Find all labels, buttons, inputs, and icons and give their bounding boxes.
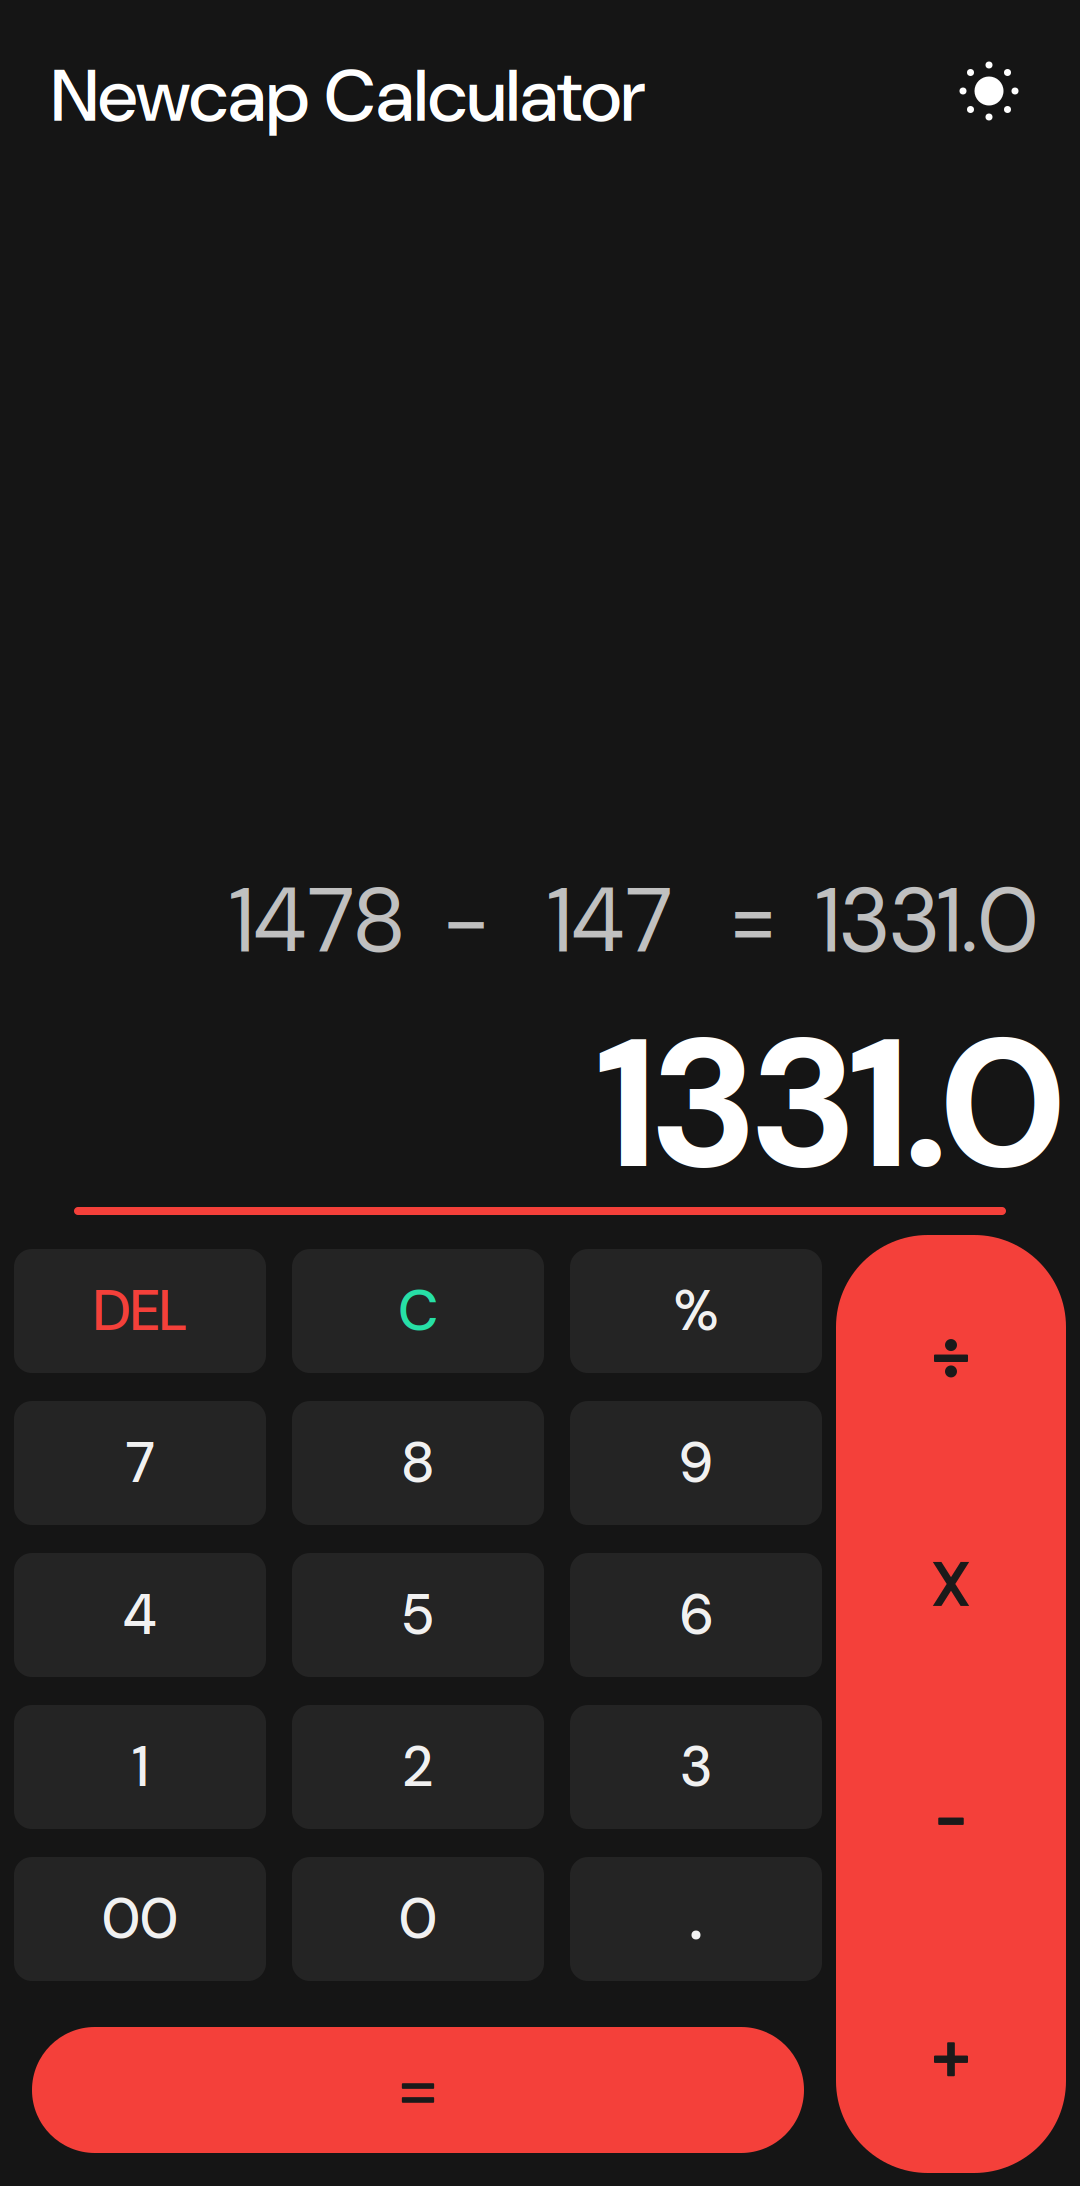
button[interactable]: Toggle light mode [949, 51, 1029, 131]
staticText: 3 [680, 1730, 711, 1803]
staticText: 1 [132, 1730, 147, 1803]
button[interactable]: Divide [836, 1235, 1066, 1469]
staticText: Newcap Calculator [51, 48, 645, 124]
button[interactable]: % [570, 1249, 822, 1373]
button[interactable]: DEL [14, 1249, 266, 1373]
button[interactable]: Multiply [836, 1469, 1066, 1704]
staticText: % [673, 1274, 718, 1347]
staticText: 0 [399, 1882, 437, 1955]
button[interactable]: Equals [32, 2027, 804, 2153]
staticText: 2 [403, 1730, 432, 1803]
staticText: 6 [680, 1578, 712, 1651]
button[interactable]: 8 [292, 1401, 544, 1525]
button[interactable]: Add [836, 1938, 1066, 2173]
button[interactable]: 2 [292, 1705, 544, 1829]
button[interactable]: C [292, 1249, 544, 1373]
staticText: 9 [680, 1426, 712, 1499]
button[interactable]: 7 [14, 1401, 266, 1525]
button[interactable]: 3 [570, 1705, 822, 1829]
staticText: DEL [93, 1274, 186, 1347]
button[interactable]: 9 [570, 1401, 822, 1525]
staticText: 5 [402, 1578, 433, 1651]
staticText: 00 [102, 1882, 178, 1955]
button[interactable]: 1 [14, 1705, 266, 1829]
staticText: 4 [123, 1578, 157, 1651]
staticText: 7 [125, 1426, 154, 1499]
staticText: 1331.0 [597, 986, 1066, 1131]
staticText: C [398, 1274, 437, 1347]
staticText: 8 [402, 1426, 434, 1499]
button[interactable]: Subtract [836, 1704, 1066, 1938]
button[interactable]: Decimal point [570, 1857, 822, 1981]
button[interactable]: 00 [14, 1857, 266, 1981]
button[interactable]: 6 [570, 1553, 822, 1677]
staticText: 1478 - 147 = 1331.0 [230, 863, 1038, 943]
button[interactable]: 0 [292, 1857, 544, 1981]
button[interactable]: 4 [14, 1553, 266, 1677]
button[interactable]: 5 [292, 1553, 544, 1677]
